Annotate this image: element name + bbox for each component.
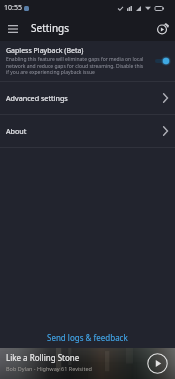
- staticText: Enabling this feature will eliminate gap…: [6, 56, 147, 75]
- staticText: Advanced settings: [6, 93, 68, 103]
- button[interactable]: Advanced settings: [0, 82, 175, 114]
- button[interactable]: About: [0, 115, 175, 147]
- staticText: 10:55: [4, 3, 22, 13]
- staticText: Settings: [31, 21, 70, 35]
- staticText: Like a Rolling Stone: [6, 352, 80, 363]
- staticText: Bob Dylan - Highway 61 Revisited: [6, 365, 92, 372]
- button[interactable]: Cast to device: [151, 16, 175, 40]
- staticText: Gapless Playback (Beta): [6, 46, 84, 56]
- button[interactable]: Open navigation menu: [0, 16, 25, 41]
- staticText: Send logs & feedback: [47, 332, 128, 343]
- staticText: About: [6, 126, 27, 136]
- button[interactable]: Gapless Playback (Beta): [0, 41, 175, 81]
- button[interactable]: Send logs & feedback: [0, 325, 175, 348]
- button[interactable]: Play: [147, 353, 168, 374]
